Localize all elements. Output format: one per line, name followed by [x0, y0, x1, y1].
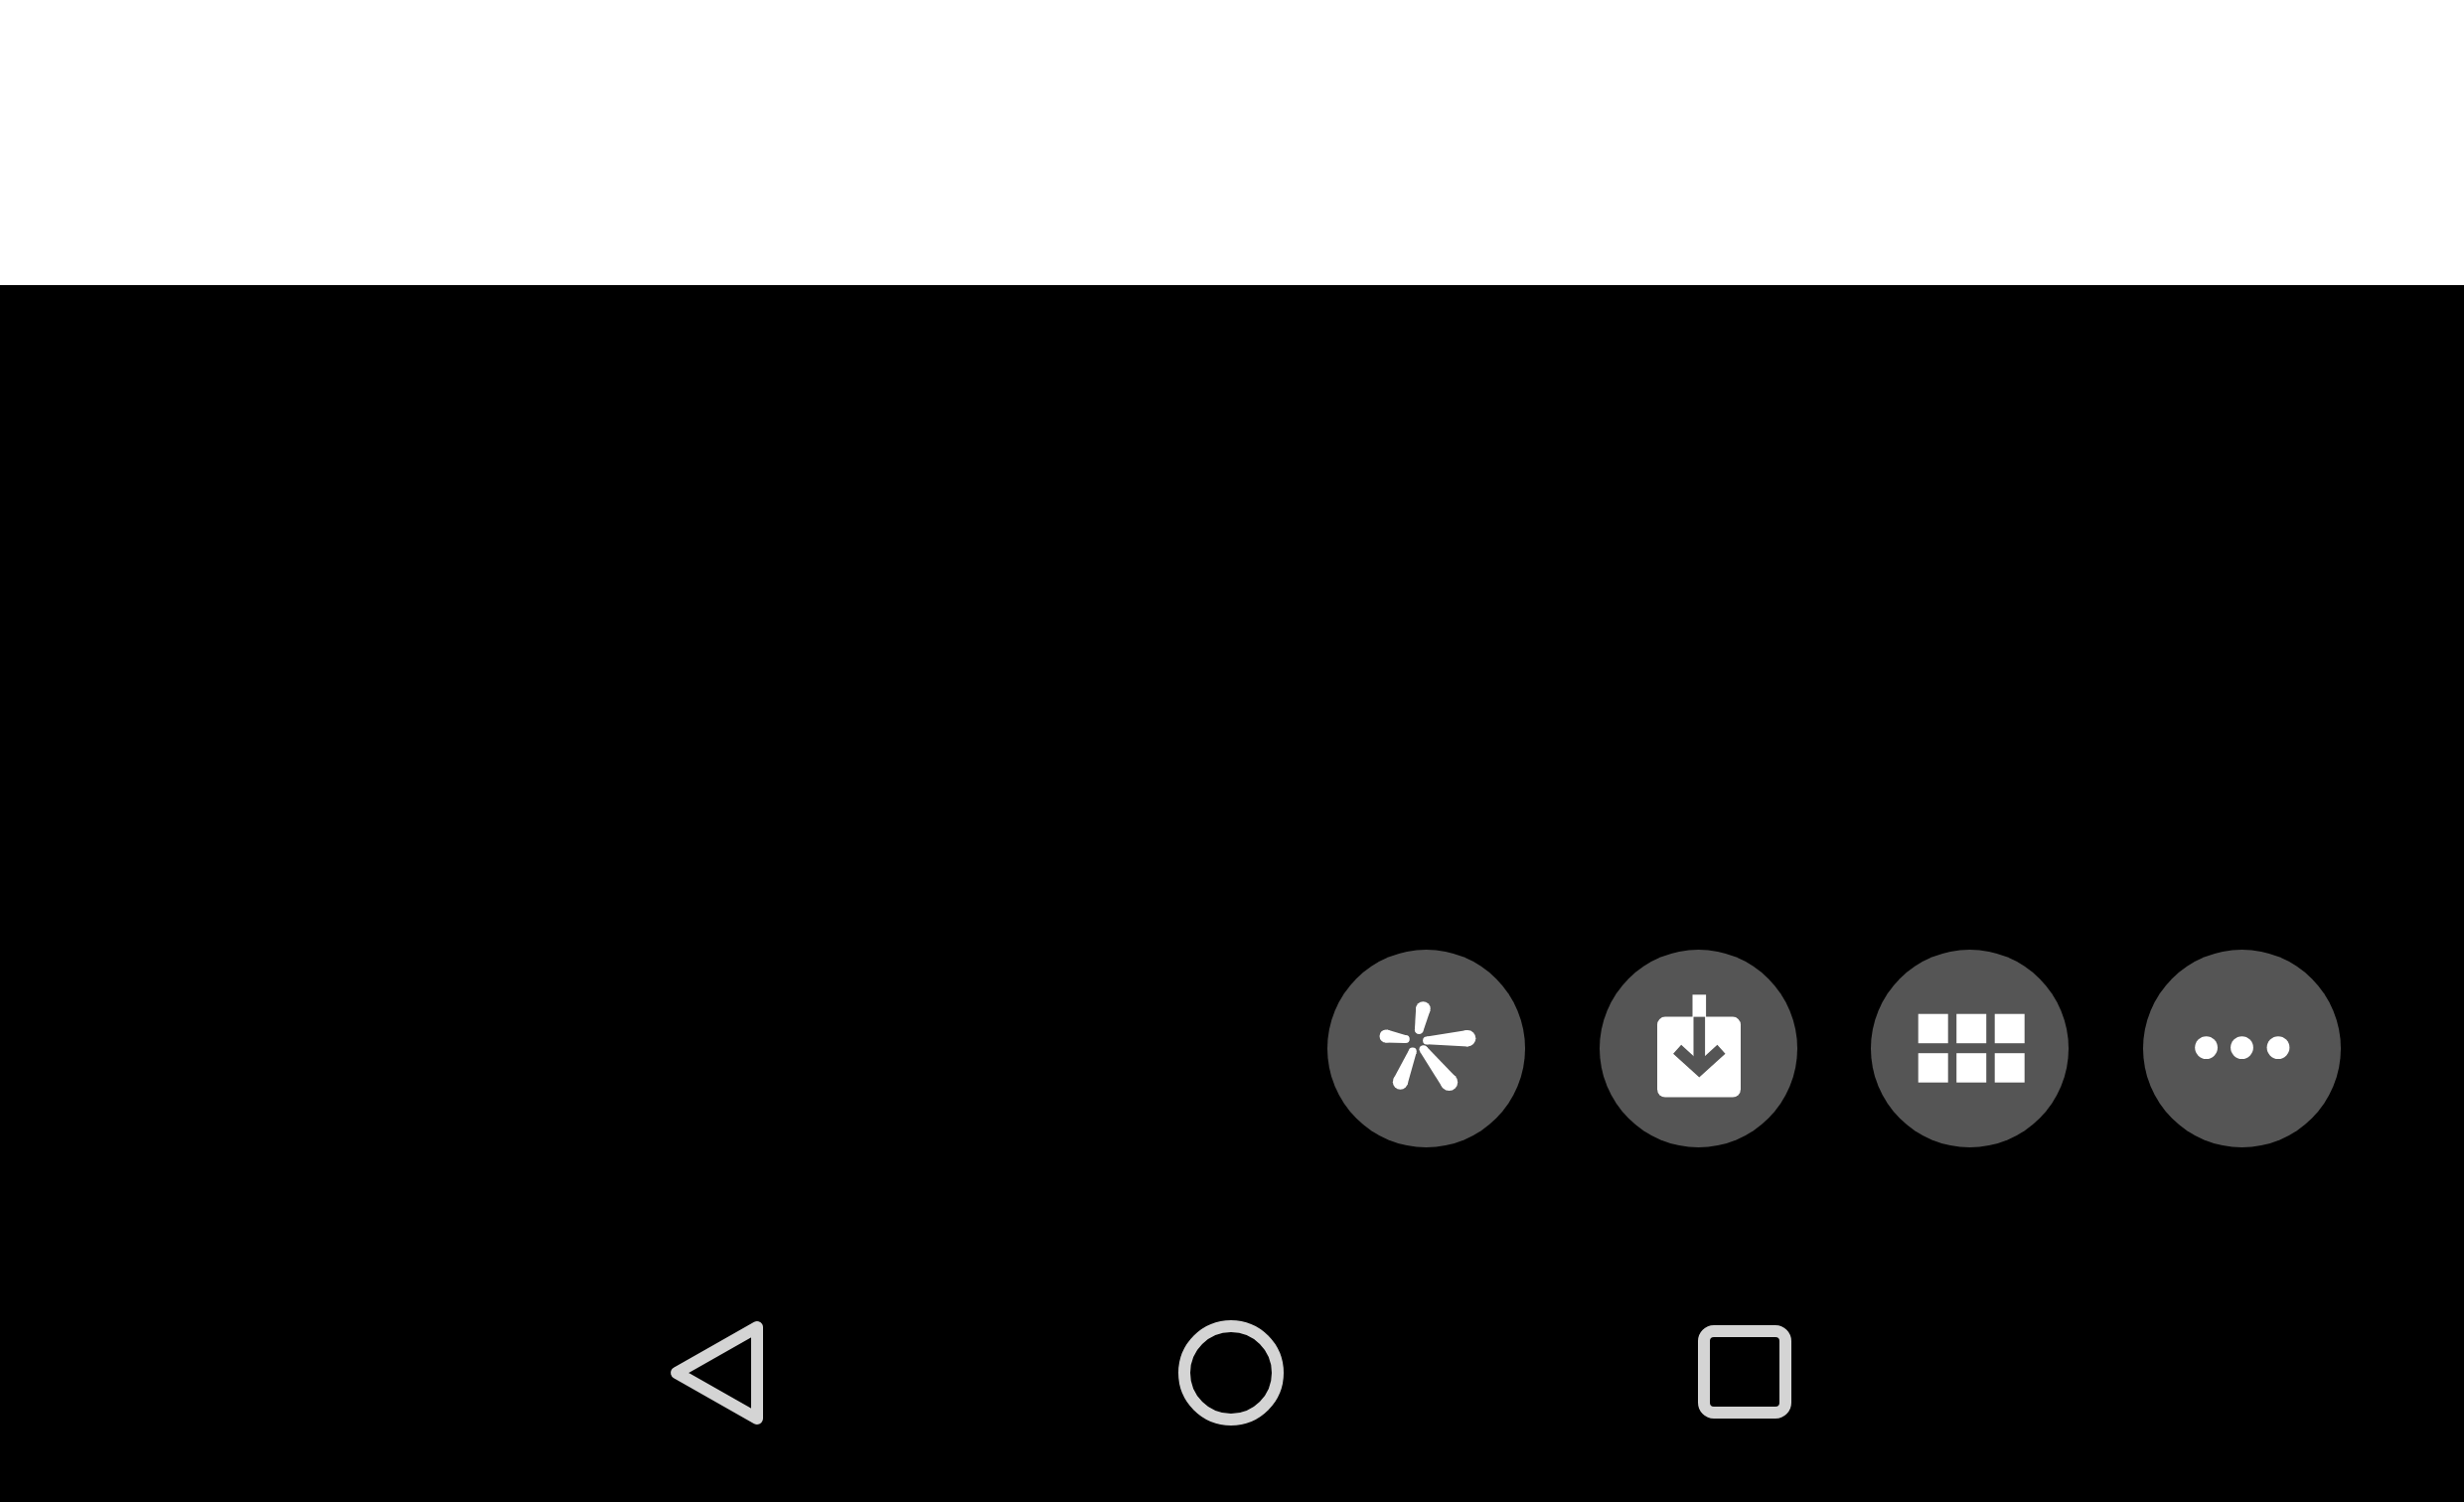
button[interactable]: Recent apps [1696, 1323, 1793, 1421]
button[interactable]: Save screenshot [1600, 950, 1797, 1147]
button[interactable]: Apps [1871, 950, 2069, 1147]
button[interactable]: Back [669, 1319, 765, 1427]
button[interactable]: Home [1176, 1318, 1286, 1427]
button[interactable]: More options [2143, 950, 2341, 1147]
button[interactable]: Smart select [1327, 950, 1525, 1147]
